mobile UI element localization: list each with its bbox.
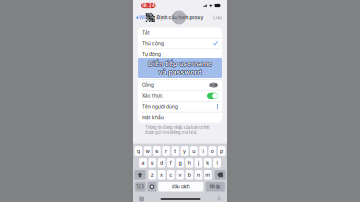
button[interactable]: u	[190, 146, 198, 156]
staticText: v	[179, 172, 182, 178]
staticText: Lưu	[213, 14, 222, 20]
staticText: j	[198, 160, 199, 166]
button[interactable]: Tự động	[138, 49, 222, 59]
button[interactable]: o	[208, 146, 216, 156]
button[interactable]: b	[185, 170, 193, 180]
staticText: w	[146, 148, 150, 154]
staticText: d	[160, 160, 163, 166]
button[interactable]: Tên người dùng	[138, 101, 222, 112]
staticText: Cổng	[142, 82, 154, 88]
staticText: Tự động	[142, 51, 161, 57]
button[interactable]: Bàn phím	[139, 196, 144, 201]
staticText: Nhập	[210, 184, 221, 189]
staticText: và password	[159, 68, 202, 76]
button[interactable]: f	[167, 158, 175, 168]
staticText: Điền tiếp username	[148, 59, 212, 67]
staticText: k	[206, 160, 209, 166]
button[interactable]: Đọc chính tả	[217, 196, 221, 202]
button[interactable]: Cổng	[138, 80, 222, 90]
button[interactable]: v	[176, 170, 184, 180]
staticText: và password	[158, 68, 201, 76]
staticText: Điền tiếp username	[148, 60, 212, 68]
staticText: Máy chủ	[142, 71, 162, 77]
staticText: Wi	[139, 14, 145, 20]
button[interactable]: l	[213, 158, 221, 168]
button[interactable]: Xác thực	[207, 93, 218, 99]
staticText: 18:24	[142, 3, 155, 8]
staticText: l	[216, 160, 217, 166]
button[interactable]: Thủ công	[138, 38, 222, 49]
button[interactable]: e	[153, 146, 161, 156]
staticText: và password	[158, 68, 201, 76]
staticText: Điền tiếp username	[148, 60, 212, 68]
staticText: b	[188, 172, 191, 178]
staticText: z	[151, 172, 154, 178]
staticText: Điền tiếp username	[148, 60, 212, 68]
button[interactable]: a	[139, 158, 147, 168]
staticText: e	[155, 148, 158, 154]
staticText: g	[178, 160, 181, 166]
staticText: Tên người dùng	[142, 104, 178, 109]
staticText: Xác thực	[142, 93, 163, 99]
staticText: Điền tiếp username	[148, 60, 212, 68]
staticText: r	[165, 148, 167, 154]
staticText: mật khẩu	[142, 115, 164, 120]
staticText: o	[211, 148, 214, 154]
staticText: y	[183, 148, 186, 154]
button[interactable]: mật khẩu	[138, 112, 222, 123]
staticText: và password	[158, 69, 201, 77]
button[interactable]: q	[134, 146, 142, 156]
staticText: i	[203, 148, 204, 154]
button[interactable]: Biểu tượng cảm xúc	[147, 182, 156, 191]
button[interactable]: j	[195, 158, 202, 168]
button[interactable]: Quay lại	[136, 13, 155, 22]
button[interactable]: dấu cách	[158, 182, 203, 191]
button[interactable]: i	[199, 146, 207, 156]
staticText: dấu cách	[172, 184, 190, 189]
button[interactable]: h	[185, 158, 193, 168]
button[interactable]: d	[158, 158, 165, 168]
staticText: h	[188, 160, 191, 166]
button[interactable]: w	[144, 146, 151, 156]
button[interactable]: g	[176, 158, 184, 168]
staticText: c	[169, 172, 172, 178]
staticText: Thông tin đăng nhập của bạn có thể được …	[145, 125, 209, 135]
button[interactable]: c	[167, 170, 175, 180]
button[interactable]: p	[218, 146, 225, 156]
staticText: p	[220, 148, 223, 154]
button[interactable]: t	[171, 146, 179, 156]
staticText: a	[141, 160, 144, 166]
button[interactable]: r	[162, 146, 170, 156]
button[interactable]: y	[181, 146, 188, 156]
staticText: u	[192, 148, 195, 154]
button[interactable]: s	[148, 158, 156, 168]
button[interactable]: 123	[135, 182, 145, 191]
staticText: m	[205, 172, 210, 178]
button[interactable]: Tắt	[138, 27, 222, 38]
staticText: Định cấu hình proxy	[156, 14, 203, 20]
staticText: và password	[158, 68, 201, 76]
staticText: t	[174, 148, 176, 154]
button[interactable]: z	[148, 170, 156, 180]
staticText: x	[160, 172, 163, 178]
staticText: s	[151, 160, 154, 166]
button[interactable]: m	[204, 170, 212, 180]
button[interactable]: Lưu	[213, 14, 222, 20]
button[interactable]: Nhập	[206, 182, 225, 191]
button[interactable]: n	[195, 170, 202, 180]
button[interactable]: Xóa	[215, 170, 226, 180]
staticText: n	[197, 172, 200, 178]
button[interactable]: Shift	[134, 170, 146, 180]
staticText: f	[170, 160, 172, 166]
staticText: 123	[136, 184, 144, 189]
button[interactable]: Máy chủ	[138, 69, 222, 79]
button[interactable]: k	[204, 158, 212, 168]
staticText: Tắt	[142, 30, 150, 35]
button[interactable]: x	[158, 170, 165, 180]
staticText: Thủ công	[142, 41, 164, 46]
staticText: q	[137, 148, 140, 154]
